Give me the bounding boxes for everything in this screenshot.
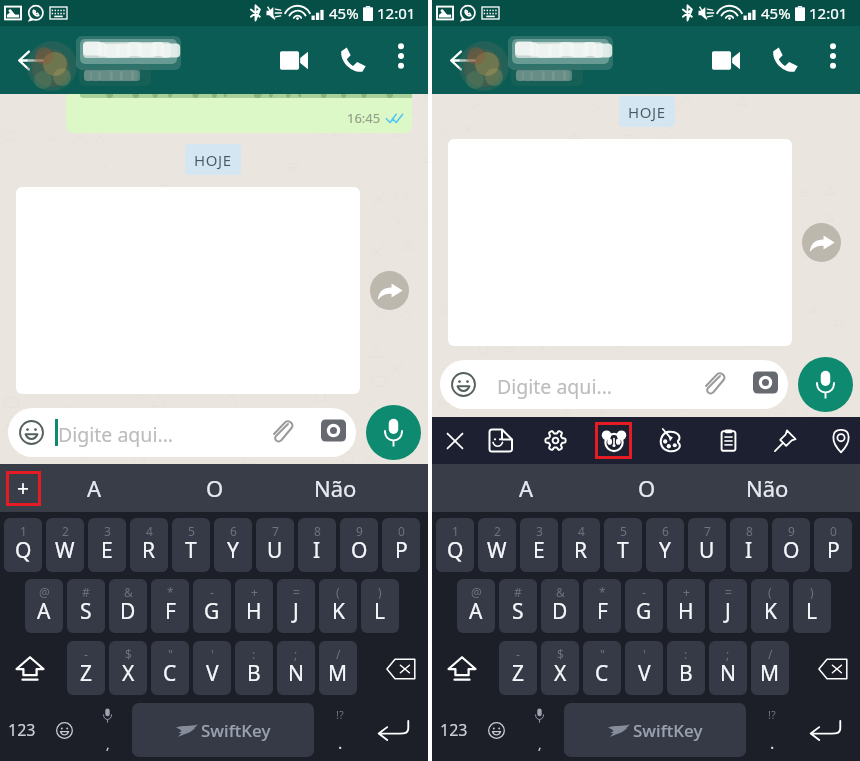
button[interactable]: 0 <box>382 518 420 572</box>
button[interactable]: Themes <box>650 417 690 464</box>
button[interactable]: ; <box>277 641 315 695</box>
button[interactable]: Não <box>275 464 395 512</box>
button[interactable]: SwiftKey <box>564 703 746 757</box>
button[interactable]: & <box>109 579 147 633</box>
button[interactable]: - <box>67 641 105 695</box>
button[interactable]: - <box>193 579 231 633</box>
button[interactable]: O <box>587 464 707 512</box>
button[interactable]: Backspace <box>812 650 854 688</box>
button[interactable]: Emoji <box>43 703 85 757</box>
button[interactable]: # <box>499 579 537 633</box>
button[interactable]: 9 <box>772 518 810 572</box>
button[interactable]: - <box>499 641 537 695</box>
button[interactable]: 2 <box>478 518 516 572</box>
button[interactable]: Clipboard <box>708 417 748 464</box>
button[interactable]: Panda stickers <box>595 422 632 459</box>
button[interactable]: SwiftKey <box>132 703 314 757</box>
button[interactable]: Stickers <box>480 417 520 464</box>
button[interactable]: 5 <box>172 518 210 572</box>
button[interactable]: 8 <box>298 518 336 572</box>
button[interactable]: Call <box>327 34 379 86</box>
button[interactable]: A <box>34 464 155 512</box>
button[interactable]: ' <box>193 641 231 695</box>
button[interactable]: Add <box>6 471 41 506</box>
button[interactable]: 4 <box>130 518 168 572</box>
button[interactable]: Não <box>707 464 827 512</box>
button[interactable]: Video call <box>700 34 752 86</box>
button[interactable]: HOJE <box>185 144 241 175</box>
button[interactable]: Voice input <box>519 703 559 757</box>
button[interactable]: ' <box>625 641 663 695</box>
button[interactable]: Digite aqui... <box>8 408 356 457</box>
button[interactable]: ; <box>709 641 747 695</box>
button[interactable]: 2 <box>46 518 84 572</box>
button[interactable]: Back <box>4 34 56 86</box>
button[interactable]: ( <box>319 579 357 633</box>
button[interactable]: = <box>277 579 315 633</box>
button[interactable]: More options <box>379 34 423 78</box>
button[interactable]: $ <box>109 641 147 695</box>
button[interactable]: + <box>667 579 705 633</box>
button[interactable]: 5 <box>604 518 642 572</box>
button[interactable]: 16:45 <box>66 94 412 133</box>
button[interactable]: 3 <box>88 518 126 572</box>
button[interactable]: Call <box>759 34 811 86</box>
button[interactable]: 9 <box>340 518 378 572</box>
button[interactable]: 1 <box>436 518 474 572</box>
button[interactable]: 0 <box>814 518 852 572</box>
button[interactable]: 4 <box>562 518 600 572</box>
button[interactable]: ) <box>793 579 831 633</box>
button[interactable]: / <box>319 641 357 695</box>
button[interactable]: More options <box>811 34 855 78</box>
button[interactable]: Voice message <box>798 357 853 412</box>
button[interactable]: Voice message <box>366 405 421 460</box>
button[interactable]: / <box>751 641 789 695</box>
button[interactable]: @ <box>25 579 63 633</box>
button[interactable]: Forward <box>370 271 409 310</box>
button[interactable]: 6 <box>214 518 252 572</box>
button[interactable]: 7 <box>256 518 294 572</box>
button[interactable]: 7 <box>688 518 726 572</box>
button[interactable]: 6 <box>646 518 684 572</box>
button[interactable]: Close <box>435 417 475 464</box>
button[interactable]: Contact profile <box>463 32 615 94</box>
button[interactable]: Contact profile <box>31 32 183 94</box>
button[interactable]: Enter <box>366 703 422 757</box>
button[interactable]: 123 <box>432 703 475 757</box>
button[interactable]: Location <box>821 417 860 464</box>
button[interactable]: = <box>709 579 747 633</box>
button[interactable]: @ <box>457 579 495 633</box>
button[interactable]: A <box>466 464 587 512</box>
button[interactable]: Emoji <box>475 703 517 757</box>
button[interactable]: : <box>667 641 705 695</box>
button[interactable]: Digite aqui... <box>440 360 788 409</box>
button[interactable]: : <box>235 641 273 695</box>
button[interactable]: & <box>541 579 579 633</box>
button[interactable]: + <box>235 579 273 633</box>
button[interactable]: # <box>67 579 105 633</box>
button[interactable]: 123 <box>0 703 43 757</box>
button[interactable]: * <box>151 579 189 633</box>
button[interactable]: ) <box>361 579 399 633</box>
button[interactable]: Settings <box>535 417 575 464</box>
button[interactable]: O <box>155 464 275 512</box>
button[interactable]: 3 <box>520 518 558 572</box>
button[interactable]: ( <box>751 579 789 633</box>
button[interactable]: 1 <box>4 518 42 572</box>
button[interactable]: Shift <box>10 650 50 688</box>
button[interactable]: !? <box>318 703 362 757</box>
button[interactable]: $ <box>541 641 579 695</box>
button[interactable]: " <box>151 641 189 695</box>
button[interactable]: * <box>583 579 621 633</box>
button[interactable]: Video call <box>268 34 320 86</box>
button[interactable]: Back <box>436 34 488 86</box>
button[interactable]: Voice input <box>87 703 127 757</box>
button[interactable]: HOJE <box>619 96 675 127</box>
button[interactable]: 8 <box>730 518 768 572</box>
button[interactable]: Shift <box>442 650 482 688</box>
button[interactable]: Forward <box>802 223 841 262</box>
button[interactable]: - <box>625 579 663 633</box>
button[interactable]: Enter <box>798 703 854 757</box>
